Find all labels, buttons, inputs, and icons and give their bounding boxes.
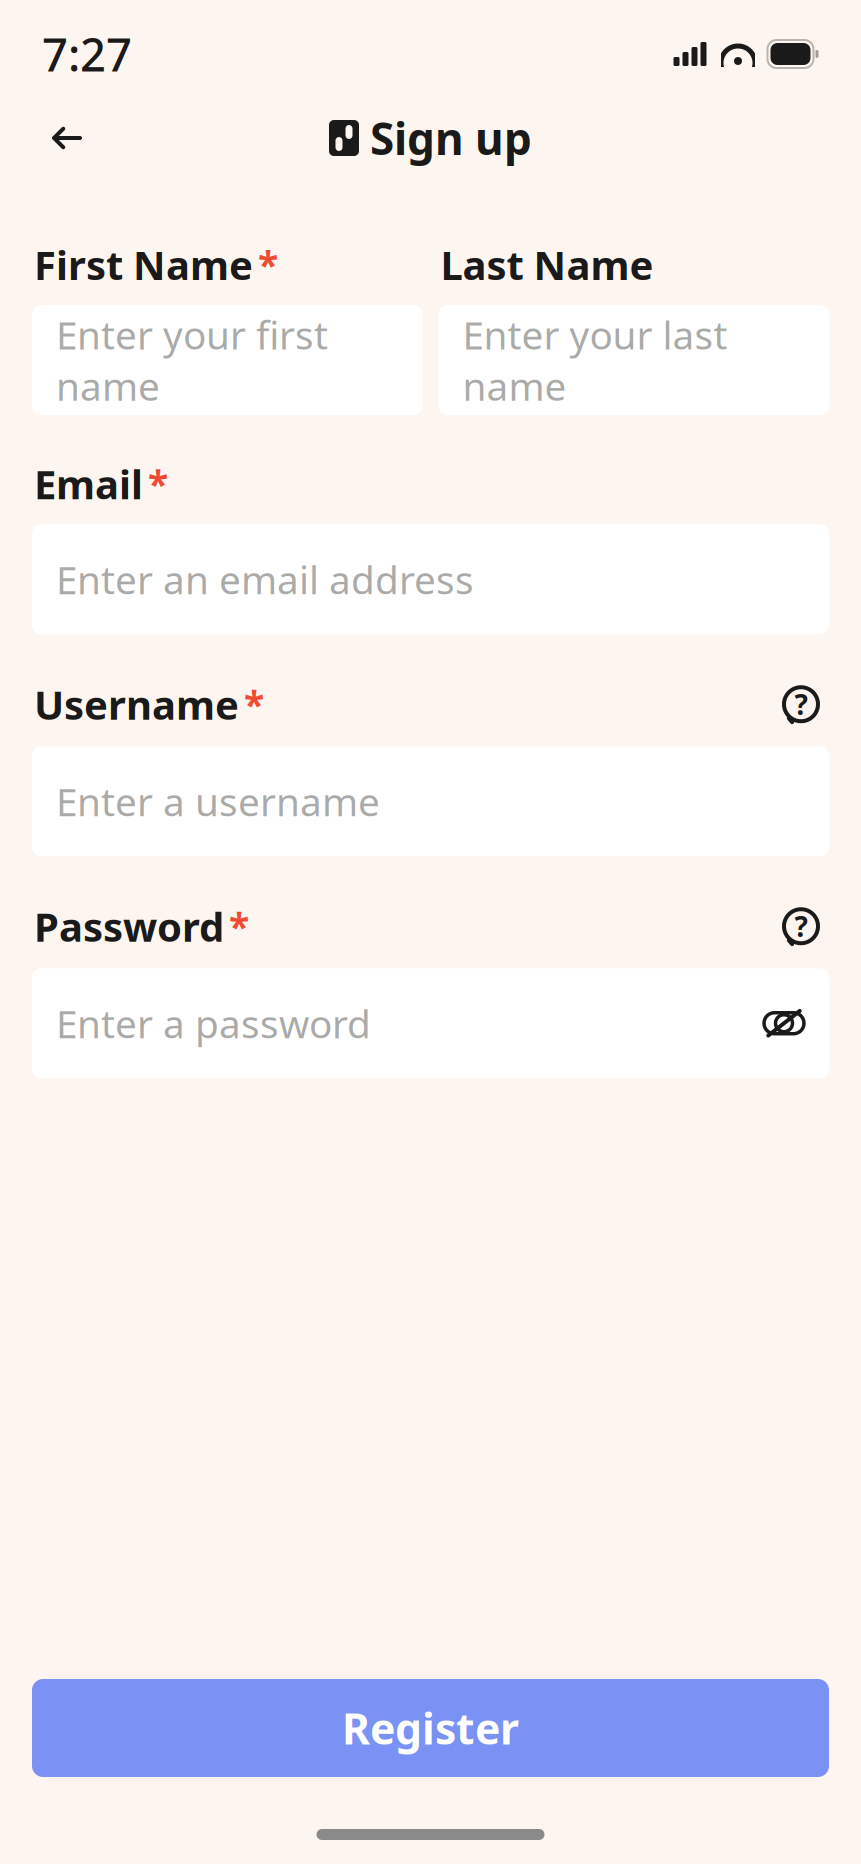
button[interactable]: Enter an email address	[32, 524, 829, 634]
staticText: *	[258, 240, 278, 289]
staticText: Sign up	[370, 109, 532, 167]
staticText: Email	[34, 457, 143, 510]
staticText: *	[244, 679, 264, 729]
staticText: *	[148, 459, 168, 508]
staticText: ?	[794, 908, 807, 945]
staticText: First Name	[34, 238, 253, 291]
button[interactable]: Enter a username	[32, 746, 829, 856]
button[interactable]: Back	[34, 105, 100, 171]
staticText: Username	[34, 678, 239, 731]
button[interactable]: Enter your first name	[32, 305, 422, 415]
staticText: Enter a username	[56, 776, 380, 827]
button[interactable]: Register	[32, 1679, 829, 1777]
button[interactable]: Show password	[755, 994, 813, 1052]
button[interactable]: Help about Password	[773, 898, 829, 954]
button[interactable]: Enter your last name	[438, 305, 829, 415]
staticText: Password	[34, 900, 224, 953]
button[interactable]: Help about Username	[773, 676, 829, 732]
staticText: Enter your first name	[56, 309, 328, 411]
staticText: Enter your last name	[462, 309, 727, 411]
staticText: ?	[794, 686, 807, 723]
staticText: Last Name	[440, 238, 653, 291]
button[interactable]: Enter a password	[32, 968, 829, 1078]
staticText: 7:27	[42, 24, 132, 84]
staticText: Enter an email address	[56, 554, 474, 605]
staticText: Enter a password	[56, 998, 371, 1049]
staticText: Register	[342, 1700, 519, 1756]
button[interactable]: Sign up	[329, 109, 532, 167]
staticText: *	[229, 901, 249, 951]
